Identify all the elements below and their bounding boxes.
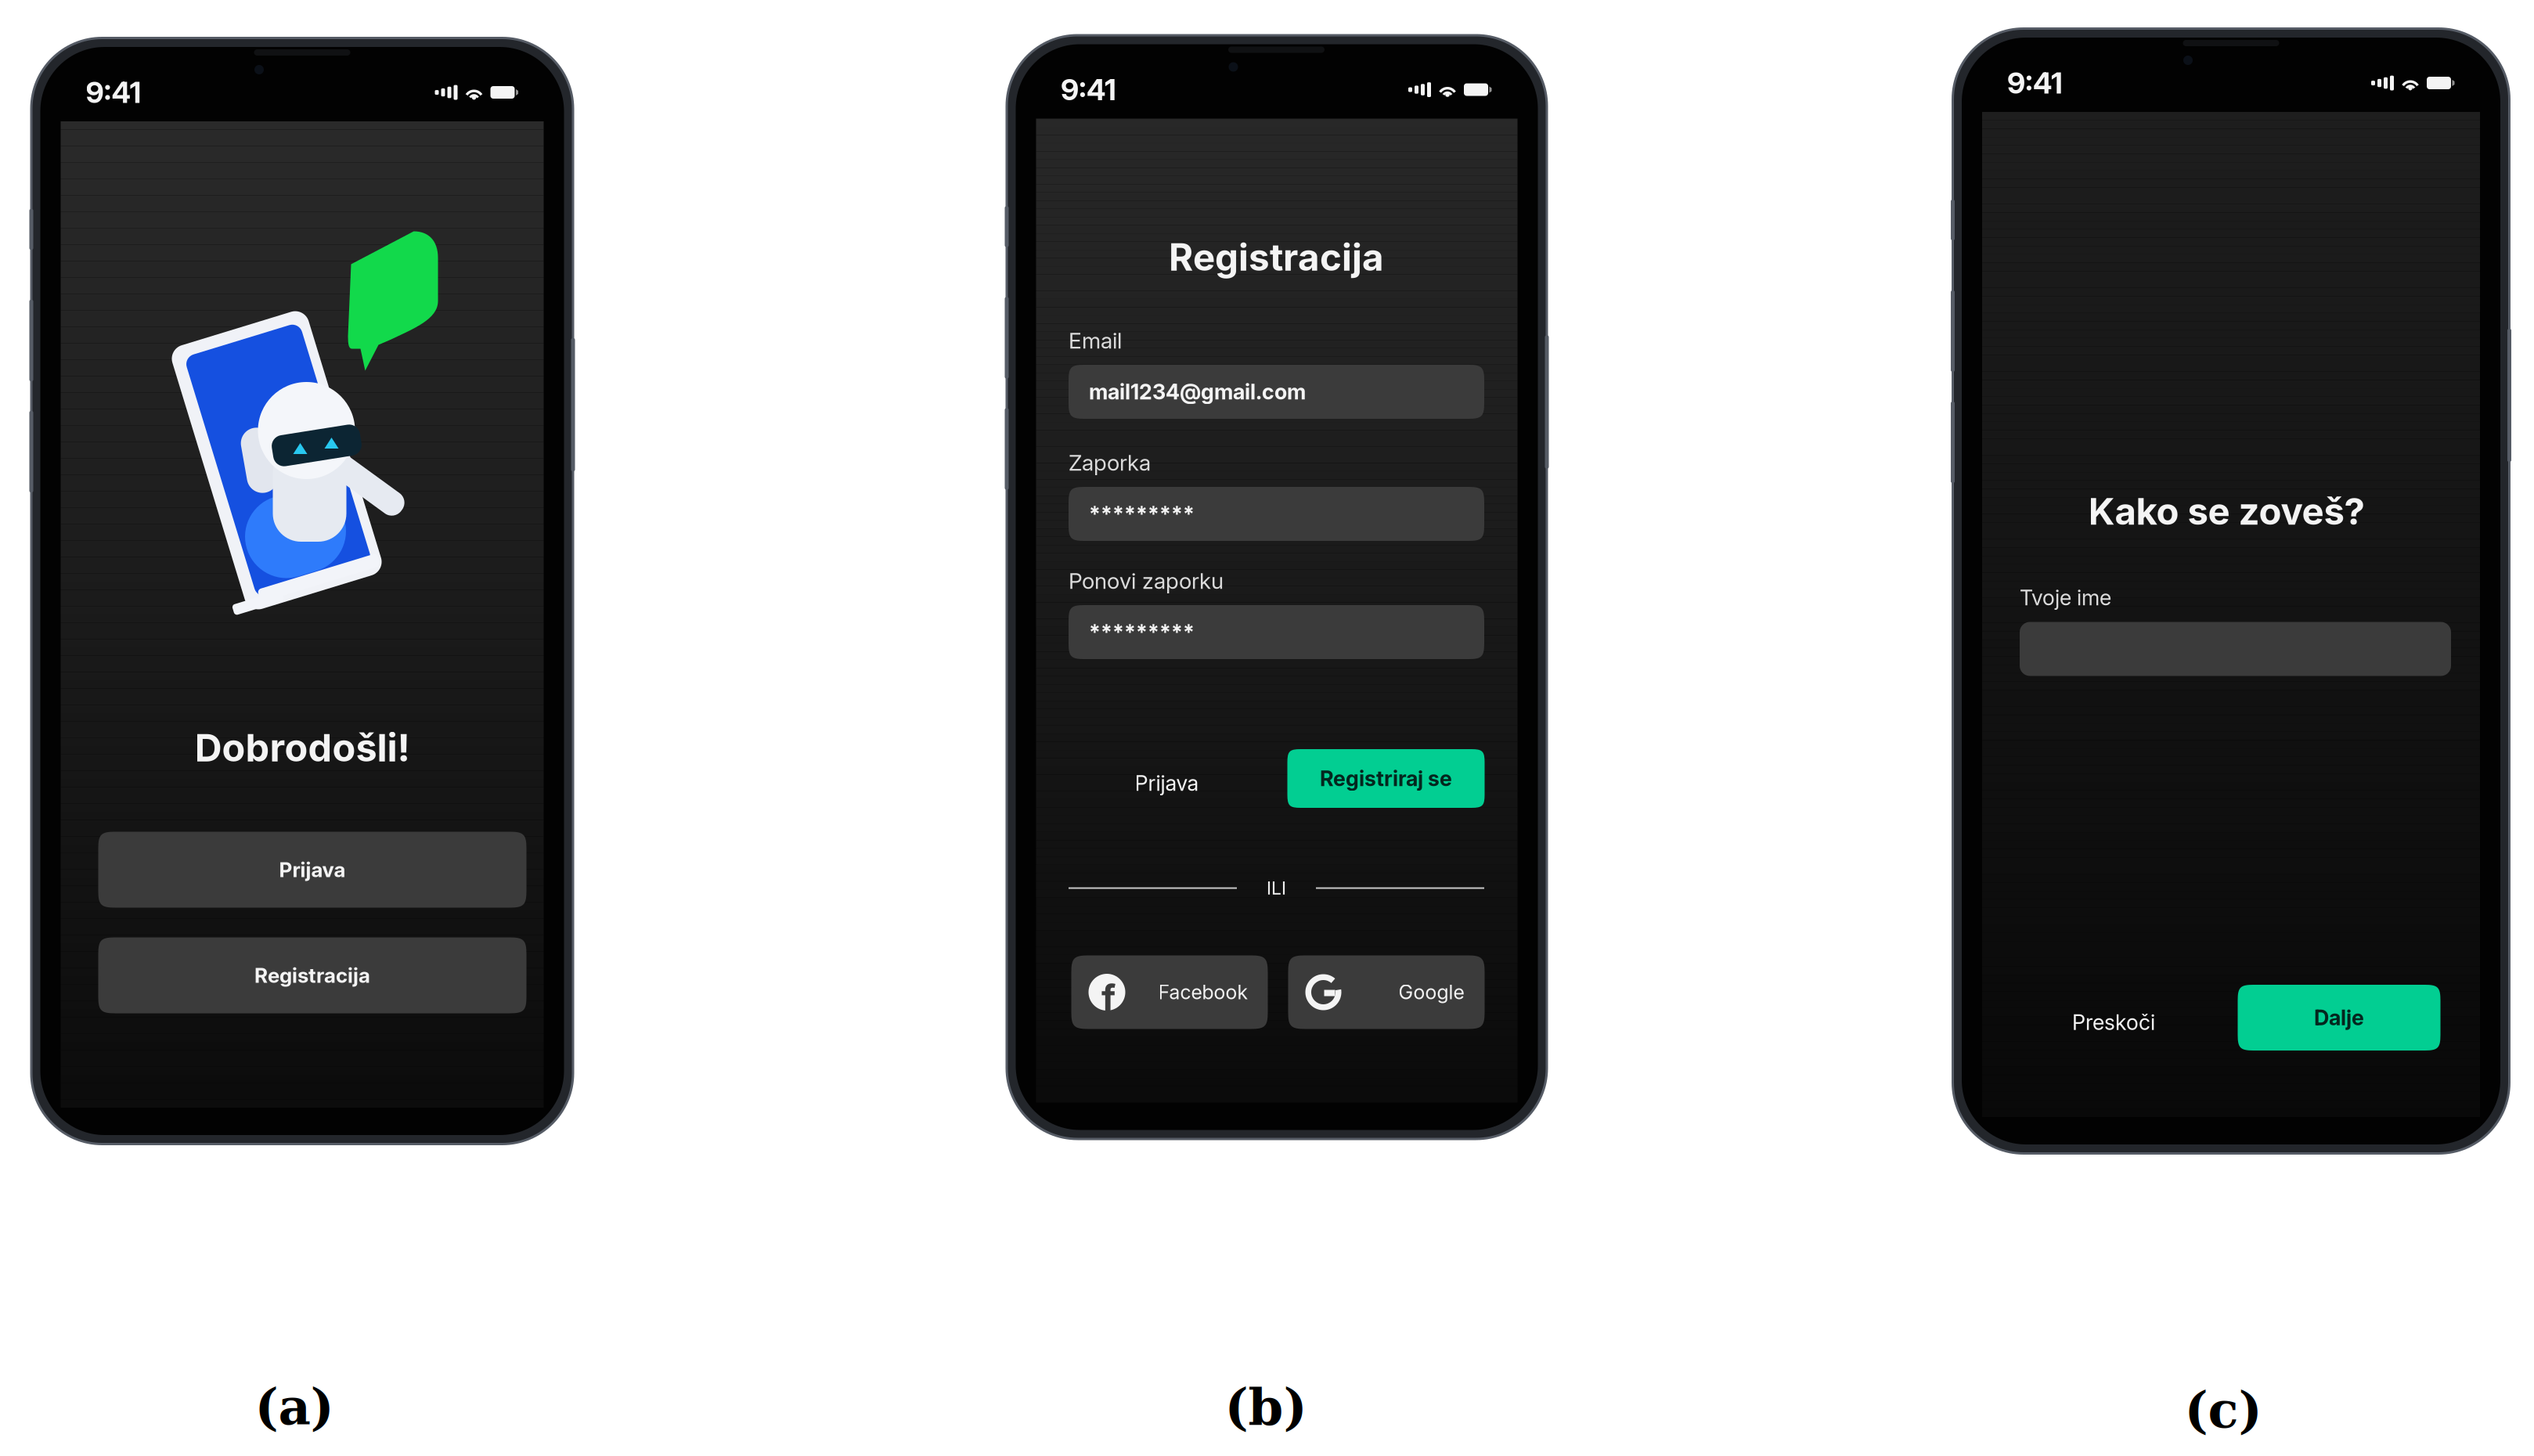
staticText: Prijava	[1135, 770, 1199, 796]
staticText: (c)	[2184, 1380, 2262, 1439]
staticText: Zaporka	[1069, 449, 1151, 476]
button[interactable]: Preskoči	[2043, 991, 2184, 1054]
staticText: (b)	[1225, 1377, 1307, 1436]
button[interactable]: Registriraj se	[1287, 749, 1485, 808]
staticText: Facebook	[1158, 980, 1247, 1004]
staticText: (a)	[255, 1377, 334, 1436]
staticText: Preskoči	[2072, 1010, 2155, 1035]
button[interactable]: f	[1071, 955, 1268, 1029]
staticText: 9:41	[86, 75, 141, 110]
staticText: Tvoje ime	[2020, 585, 2111, 610]
staticText: Google	[1399, 980, 1464, 1004]
button[interactable]: Registracija	[98, 937, 526, 1013]
staticText: Kako se zoveš?	[2088, 489, 2365, 533]
staticText: Registriraj se	[1320, 766, 1452, 791]
button[interactable]: Email	[1069, 365, 1484, 419]
button[interactable]: Google	[1288, 955, 1485, 1029]
staticText: 9:41	[1061, 72, 1116, 107]
staticText: 9:41	[2007, 65, 2063, 101]
staticText: *********	[1089, 501, 1195, 527]
button[interactable]: Ponovi zaporku	[1069, 605, 1484, 659]
staticText: Prijava	[279, 857, 346, 882]
staticText: mail1234@gmail.com	[1089, 379, 1306, 405]
staticText: Dalje	[2314, 1005, 2364, 1030]
button[interactable]: Prijava	[98, 832, 526, 908]
staticText: Registracija	[1169, 235, 1384, 280]
staticText: *********	[1089, 619, 1195, 645]
staticText: Ponovi zaporku	[1069, 568, 1224, 594]
staticText: Dobrodošli!	[195, 725, 410, 771]
button[interactable]: Prijava	[1100, 753, 1233, 813]
staticText: Registracija	[254, 963, 370, 988]
staticText: Email	[1069, 327, 1122, 354]
button[interactable]: Zaporka	[1069, 487, 1484, 541]
staticText: ILI	[1267, 877, 1286, 899]
button[interactable]: Dalje	[2238, 985, 2440, 1051]
staticText: f	[1101, 976, 1116, 1020]
